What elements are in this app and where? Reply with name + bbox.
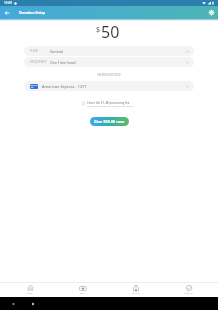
- staticText: Home: [26, 292, 33, 295]
- staticText: PAYMENT METHOD: [0, 73, 218, 77]
- staticText: FREQUENCY: [30, 60, 47, 64]
- staticText: $: [96, 25, 101, 35]
- button[interactable]: Give $50.00 now: [90, 117, 129, 126]
- button[interactable]: Give: [56, 285, 109, 295]
- button[interactable]: American Express - 1371: [24, 81, 194, 91]
- button[interactable]: FUND: [24, 46, 194, 56]
- staticText: American Express - 1371: [42, 84, 87, 89]
- button[interactable]: Settings: [205, 6, 218, 19]
- staticText: General: [50, 49, 63, 54]
- staticText: Check In: [184, 292, 193, 295]
- staticText: Your $50 gift sends only $48.52 to the c…: [87, 105, 134, 108]
- button[interactable]: Check In: [162, 285, 215, 295]
- button[interactable]: Groups: [109, 285, 162, 295]
- staticText: Give $50.00 now: [94, 119, 125, 124]
- staticText: Donation Setup: [19, 10, 46, 15]
- staticText: 16:59: [4, 1, 13, 5]
- staticText: 50: [101, 21, 120, 43]
- button[interactable]: FREQUENCY: [24, 57, 194, 67]
- button[interactable]: Home: [3, 285, 56, 295]
- staticText: Give: [80, 292, 85, 295]
- button[interactable]: Cover processing fee: [82, 102, 85, 105]
- staticText: FUND: [30, 49, 38, 53]
- staticText: One Time (now): [50, 60, 76, 65]
- staticText: Cover the $1.48 processing fee: [87, 101, 130, 105]
- button[interactable]: Back: [0, 6, 13, 19]
- staticText: Groups: [132, 292, 140, 295]
